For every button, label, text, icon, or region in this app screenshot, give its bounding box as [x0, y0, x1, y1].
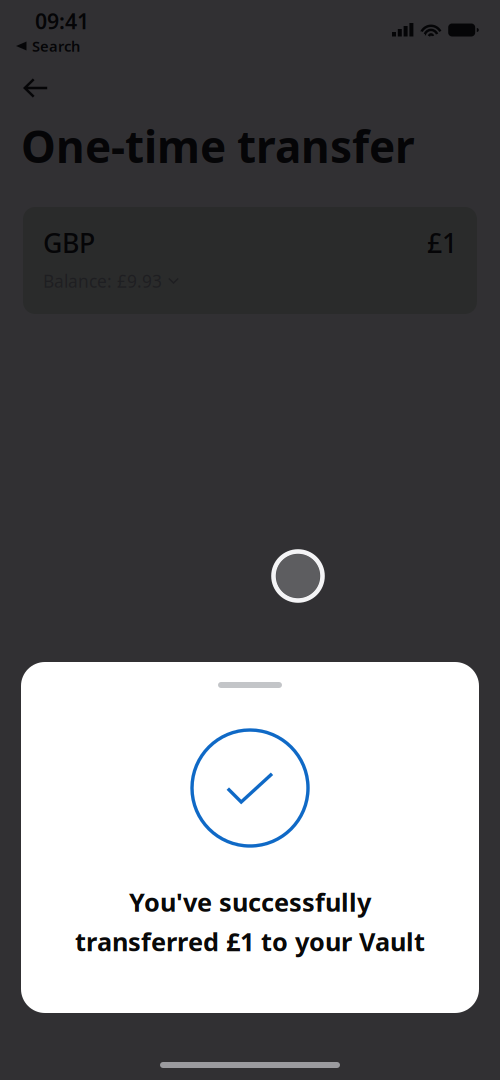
- staticText: Balance: £9.93: [43, 269, 162, 292]
- button[interactable]: Back: [14, 68, 58, 108]
- staticText: You've successfully: [129, 885, 371, 919]
- staticText: 09:41: [35, 7, 89, 35]
- staticText: transferred £1 to your Vault: [75, 925, 425, 958]
- staticText: One-time transfer: [21, 117, 415, 175]
- staticText: GBP: [43, 225, 95, 260]
- button[interactable]: GBP: [23, 207, 477, 314]
- button[interactable]: Search: [16, 35, 136, 57]
- staticText: Search: [32, 36, 80, 56]
- staticText: £1: [427, 225, 457, 260]
